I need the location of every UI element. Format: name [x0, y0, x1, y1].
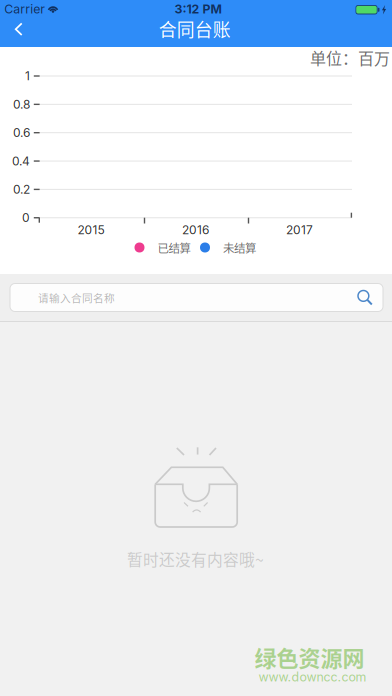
staticText: Carrier	[4, 2, 45, 16]
staticText: 0.4	[12, 154, 30, 168]
button[interactable]: Back	[3, 15, 34, 43]
staticText: 0.2	[13, 182, 30, 197]
staticText: 2015	[77, 223, 104, 237]
staticText: 已结算	[157, 239, 190, 256]
staticText: 请输入合同名称	[38, 290, 115, 305]
staticText: 2017	[286, 223, 313, 237]
staticText: 0.6	[13, 125, 30, 140]
staticText: www.downcc.com	[258, 669, 366, 684]
staticText: 单位：百万	[310, 46, 390, 69]
staticText: 合同台账	[159, 16, 231, 42]
staticText: 3:12 PM	[174, 2, 221, 16]
staticText: 2016	[182, 223, 209, 237]
button[interactable]: 请输入合同名称	[10, 283, 383, 311]
staticText: 0	[22, 210, 30, 225]
staticText: 暂时还没有内容哦~	[127, 548, 264, 570]
staticText: 未结算	[223, 239, 256, 256]
staticText: 0.8	[13, 97, 30, 112]
staticText: 绿色资源网	[254, 641, 364, 673]
staticText: 1	[25, 69, 30, 83]
